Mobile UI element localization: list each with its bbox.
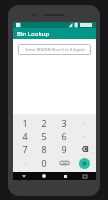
staticText: 6 <box>61 130 67 142</box>
button[interactable]: - <box>74 116 94 129</box>
button[interactable]: Recent apps <box>60 172 70 180</box>
button[interactable]: 4 <box>15 129 34 142</box>
staticText: 3 <box>61 117 67 129</box>
button[interactable]: 8 <box>34 142 54 156</box>
staticText: 9 <box>61 143 67 155</box>
staticText: Enter BIN/IIN (first 6 to 8 digits) <box>25 47 85 52</box>
staticText: 7 <box>22 143 28 155</box>
button[interactable]: 5 <box>34 129 54 142</box>
staticText: 8 <box>41 143 47 155</box>
button[interactable]: Switch to letters <box>54 156 74 170</box>
button[interactable]: 7 <box>15 142 34 156</box>
button[interactable]: 2 <box>34 116 54 129</box>
button[interactable]: Bin Lookup <box>13 28 96 39</box>
button[interactable]: 0 <box>34 156 54 170</box>
button[interactable]: 3 <box>54 116 74 129</box>
button[interactable]: 9 <box>54 142 74 156</box>
staticText: , <box>83 132 85 140</box>
button[interactable]: Home <box>39 172 49 180</box>
button[interactable]: Back <box>19 172 29 180</box>
button[interactable]: Change keyboard <box>80 172 90 180</box>
staticText: - <box>83 119 85 127</box>
button[interactable]: Enter BIN/IIN (first 6 to 8 digits) <box>18 44 91 55</box>
button[interactable]: 1 <box>15 116 34 129</box>
staticText: 4 <box>22 130 28 142</box>
staticText: . <box>24 159 26 167</box>
button[interactable]: Backspace <box>74 142 94 156</box>
button[interactable]: 6 <box>54 129 74 142</box>
staticText: 2 <box>41 117 47 129</box>
staticText: Bin Lookup <box>17 30 50 38</box>
staticText: 5 <box>41 130 47 142</box>
staticText: 1 <box>22 117 28 129</box>
staticText: 0 <box>41 157 47 169</box>
button[interactable]: Go <box>74 156 94 170</box>
